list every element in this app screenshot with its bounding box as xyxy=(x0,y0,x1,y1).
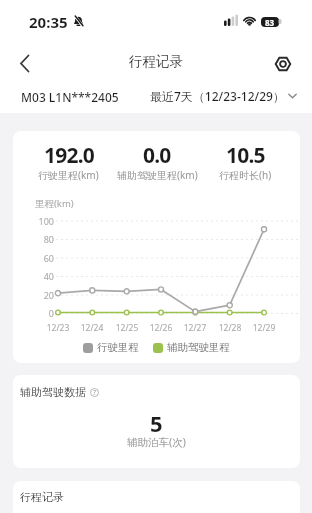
staticText: 行程记录 xyxy=(20,490,64,504)
staticText: 行驶里程(km) xyxy=(38,168,99,182)
button[interactable] xyxy=(8,48,40,80)
staticText: 最近7天（12/23-12/29） xyxy=(150,88,285,104)
staticText: 12/24 xyxy=(75,322,109,334)
staticText: 12/27 xyxy=(178,322,212,334)
button[interactable] xyxy=(268,49,298,79)
button[interactable]: 辅助驾驶数据 xyxy=(20,385,99,399)
button[interactable]: 最近7天（12/23-12/29） xyxy=(150,88,297,104)
staticText: 100 xyxy=(24,215,54,227)
staticText: 12/23 xyxy=(41,322,75,334)
staticText: 行程时长(h) xyxy=(219,168,272,182)
staticText: 5 xyxy=(150,408,163,438)
staticText: 0.0 xyxy=(143,141,171,170)
staticText: ? xyxy=(93,388,96,397)
staticText: 辅助驾驶里程 xyxy=(167,341,230,354)
staticText: 192.0 xyxy=(44,141,94,170)
staticText: 12/25 xyxy=(110,322,144,334)
staticText: 40 xyxy=(24,270,54,282)
staticText: 行程记录 xyxy=(129,53,183,70)
staticText: 20 xyxy=(24,289,54,301)
staticText: 12/28 xyxy=(213,322,247,334)
staticText: 60 xyxy=(24,252,54,264)
staticText: 10.5 xyxy=(226,141,265,170)
staticText: 20:35 xyxy=(29,12,68,32)
staticText: 辅助驾驶数据 xyxy=(20,385,86,399)
staticText: 0 xyxy=(24,307,54,319)
staticText: 里程(km) xyxy=(35,197,74,210)
staticText: 辅助泊车(次) xyxy=(127,435,186,449)
staticText: 辅助驾驶里程(km) xyxy=(117,168,198,182)
staticText: 80 xyxy=(24,233,54,245)
staticText: 83 xyxy=(265,17,275,27)
staticText: 行驶里程 xyxy=(97,341,139,354)
staticText: 12/26 xyxy=(144,322,178,334)
staticText: 12/29 xyxy=(247,322,281,334)
staticText: M03 L1N***2405 xyxy=(21,89,119,105)
